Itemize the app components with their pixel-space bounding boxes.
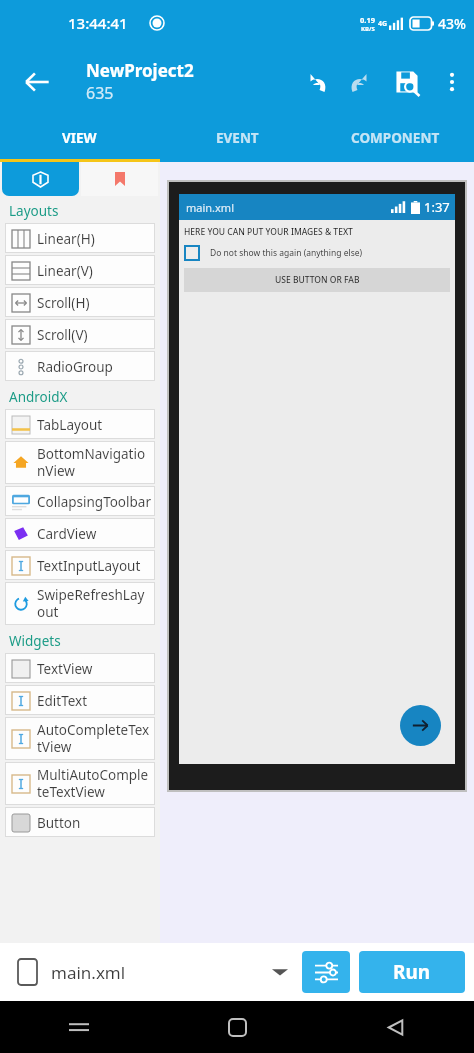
staticText: NewProject2 — [86, 59, 194, 82]
button[interactable]: AutoCompleteTextView — [5, 717, 155, 760]
button[interactable]: Recents — [0, 1001, 158, 1053]
staticText: EditText — [37, 692, 88, 710]
staticText: MultiAutoCompleteTextView — [37, 766, 152, 801]
staticText: VIEW — [62, 129, 97, 147]
button[interactable]: Settings — [302, 951, 350, 993]
staticText: CardView — [37, 525, 97, 543]
button[interactable]: Scroll(V) — [5, 319, 155, 349]
button[interactable]: Linear(V) — [5, 255, 155, 285]
button[interactable]: Back — [316, 1001, 474, 1053]
button[interactable]: Next — [400, 705, 441, 746]
button[interactable]: USE BUTTON OR FAB — [184, 268, 450, 292]
button[interactable]: Save — [384, 59, 430, 105]
staticText: SwipeRefreshLayout — [37, 586, 152, 621]
button[interactable]: VIEW — [0, 117, 158, 159]
staticText: Button — [37, 814, 81, 832]
staticText: CollapsingToolbar — [37, 493, 151, 511]
staticText: 1:37 — [424, 198, 450, 216]
staticText: main.xml — [51, 961, 126, 984]
staticText: AndroidX — [9, 388, 68, 406]
button[interactable]: SwipeRefreshLayout — [5, 582, 155, 625]
staticText: Linear(H) — [37, 230, 95, 248]
button[interactable]: RadioGroup — [5, 351, 155, 381]
staticText: AutoCompleteTextView — [37, 721, 152, 756]
button[interactable]: Redo — [338, 59, 384, 105]
staticText: TabLayout — [37, 416, 103, 434]
button[interactable]: Back — [14, 59, 60, 105]
button[interactable]: Home — [158, 1001, 316, 1053]
staticText: 13:44:41 — [68, 13, 128, 33]
staticText: Linear(V) — [37, 262, 93, 280]
staticText: Scroll(H) — [37, 294, 90, 312]
staticText: 0.19 — [360, 15, 375, 25]
staticText: KB/S — [361, 25, 375, 33]
staticText: COMPONENT — [351, 129, 440, 147]
staticText: USE BUTTON OR FAB — [275, 274, 360, 286]
button[interactable]: TabLayout — [5, 409, 155, 439]
button[interactable]: TextInputLayout — [5, 550, 155, 580]
button[interactable]: Scroll(H) — [5, 287, 155, 317]
staticText: Run — [393, 959, 431, 985]
staticText: TextInputLayout — [37, 557, 141, 575]
button[interactable]: MultiAutoCompleteTextView — [5, 762, 155, 805]
staticText: Scroll(V) — [37, 326, 88, 344]
button[interactable]: TextView — [5, 653, 155, 683]
staticText: BottomNavigationView — [37, 445, 152, 480]
button[interactable]: Run — [359, 951, 465, 993]
staticText: 43% — [438, 14, 466, 33]
staticText: EVENT — [216, 129, 259, 147]
staticText: Widgets — [9, 632, 61, 650]
staticText: TextView — [37, 660, 93, 678]
staticText: main.xml — [186, 200, 234, 215]
button[interactable]: CollapsingToolbar — [5, 486, 155, 516]
button[interactable]: Undo — [292, 59, 338, 105]
staticText: Layouts — [9, 202, 59, 220]
staticText: HERE YOU CAN PUT YOUR IMAGES & TEXT — [184, 226, 353, 238]
staticText: 4G — [378, 19, 388, 29]
staticText: Do not show this again (anything else) — [210, 247, 363, 259]
staticText: RadioGroup — [37, 358, 113, 376]
button[interactable]: More options — [430, 60, 474, 104]
button[interactable]: COMPONENT — [316, 117, 474, 159]
button[interactable]: Linear(H) — [5, 223, 155, 253]
button[interactable]: EVENT — [158, 117, 316, 159]
button[interactable]: main.xml — [0, 943, 302, 1001]
button[interactable]: BottomNavigationView — [5, 441, 155, 484]
button[interactable]: EditText — [5, 685, 155, 715]
button[interactable]: Views palette — [2, 162, 79, 196]
button[interactable]: Button — [5, 807, 155, 837]
button[interactable]: Favourites — [81, 162, 158, 196]
button[interactable]: CardView — [5, 518, 155, 548]
staticText: 635 — [86, 82, 114, 104]
